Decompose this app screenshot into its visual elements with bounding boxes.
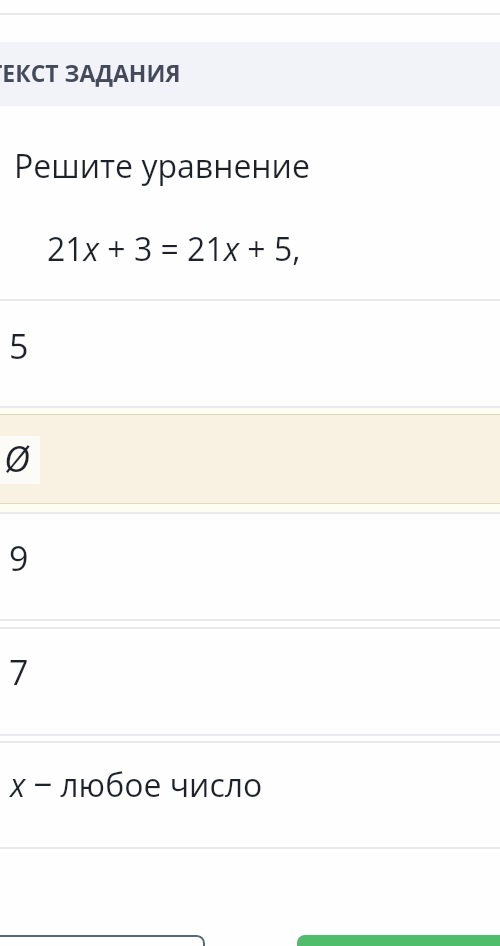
staticText: 9: [9, 535, 29, 581]
button[interactable]: 9: [0, 514, 500, 619]
staticText: x ‒ любое число: [10, 763, 263, 807]
staticText: 7: [9, 649, 29, 695]
staticText: Решите уравнение: [14, 144, 310, 188]
button[interactable]: 5: [0, 301, 500, 406]
staticText: Ø: [4, 434, 30, 482]
button[interactable]: Назад: [0, 935, 205, 946]
staticText: 21x + 3 = 21x + 5,: [47, 227, 301, 271]
button[interactable]: x ‒ любое число: [0, 743, 500, 847]
staticText: 5: [9, 323, 29, 369]
button[interactable]: 7: [0, 629, 500, 734]
button[interactable]: ТЕКСТ ЗАДАНИЯ: [0, 42, 500, 106]
button[interactable]: Ответить: [297, 935, 500, 946]
button[interactable]: Ø: [0, 415, 500, 503]
staticText: ТЕКСТ ЗАДАНИЯ: [0, 57, 181, 88]
